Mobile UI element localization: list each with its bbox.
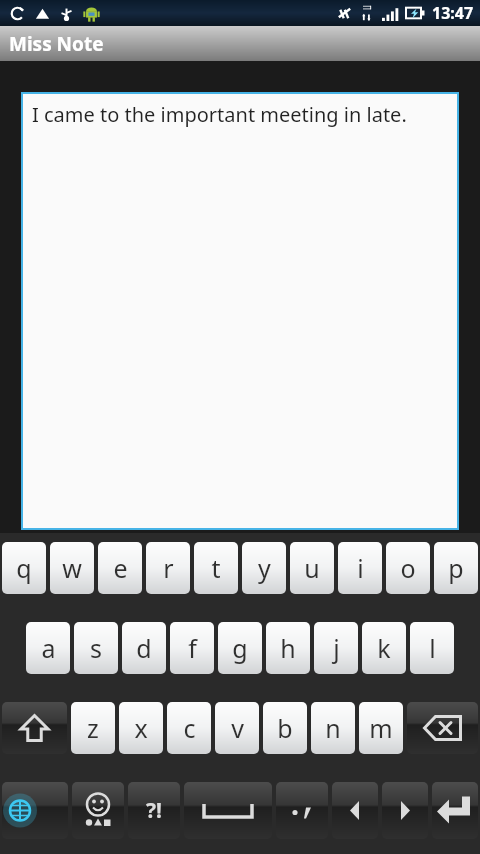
button[interactable]: d — [122, 622, 166, 674]
staticText: x — [134, 711, 148, 745]
button[interactable]: I came to the important meeting in late. — [23, 94, 457, 528]
button[interactable]: u — [290, 542, 334, 594]
button[interactable]: Period — [276, 782, 328, 839]
button[interactable]: h — [266, 622, 310, 674]
button[interactable]: l — [410, 622, 454, 674]
button[interactable]: q — [2, 542, 46, 594]
button[interactable]: s — [74, 622, 118, 674]
staticText: q — [16, 551, 32, 585]
button[interactable]: g — [218, 622, 262, 674]
button[interactable]: Backspace — [407, 702, 478, 754]
staticText: c — [183, 711, 196, 745]
button[interactable]: c — [167, 702, 211, 754]
staticText: s — [90, 631, 102, 665]
button[interactable]: a — [26, 622, 70, 674]
button[interactable]: x — [119, 702, 163, 754]
button[interactable]: Enter — [432, 782, 478, 839]
staticText: p — [448, 551, 464, 585]
button[interactable]: Emoji — [72, 782, 124, 839]
button[interactable]: p — [434, 542, 478, 594]
button[interactable]: f — [170, 622, 214, 674]
button[interactable]: z — [71, 702, 115, 754]
staticText: z — [87, 711, 99, 745]
button[interactable]: y — [242, 542, 286, 594]
staticText: f — [188, 631, 197, 665]
staticText: g — [232, 631, 248, 665]
button[interactable]: t — [194, 542, 238, 594]
button[interactable]: Left — [332, 782, 378, 839]
staticText: w — [62, 551, 82, 585]
staticText: y — [258, 551, 271, 585]
staticText: ?! — [146, 796, 162, 825]
button[interactable]: Shift — [2, 702, 67, 754]
staticText: t — [211, 551, 221, 585]
button[interactable]: n — [311, 702, 355, 754]
staticText: k — [377, 631, 391, 665]
button[interactable]: m — [359, 702, 403, 754]
button[interactable]: i — [338, 542, 382, 594]
staticText: d — [136, 631, 152, 665]
button[interactable]: b — [263, 702, 307, 754]
staticText: a — [41, 631, 56, 665]
button[interactable]: j — [314, 622, 358, 674]
button[interactable]: w — [50, 542, 94, 594]
button[interactable]: Symbols — [128, 782, 180, 839]
staticText: u — [304, 551, 320, 585]
staticText: r — [163, 551, 174, 585]
button[interactable]: v — [215, 702, 259, 754]
staticText: v — [231, 711, 244, 745]
staticText: j — [333, 631, 340, 665]
staticText: m — [369, 711, 393, 745]
button[interactable]: Right — [382, 782, 428, 839]
button[interactable]: o — [386, 542, 430, 594]
button[interactable]: Space — [184, 782, 272, 839]
staticText: Miss Note — [9, 31, 104, 57]
button[interactable]: e — [98, 542, 142, 594]
staticText: h — [280, 631, 296, 665]
staticText: e — [113, 551, 128, 585]
staticText: l — [429, 631, 436, 665]
staticText: n — [325, 711, 341, 745]
button[interactable]: k — [362, 622, 406, 674]
button[interactable]: r — [146, 542, 190, 594]
staticText: i — [357, 551, 364, 585]
button[interactable]: Switch language — [2, 782, 68, 839]
staticText: I came to the important meeting in late. — [32, 101, 407, 128]
staticText: b — [277, 711, 293, 745]
staticText: 13:47 — [432, 2, 474, 24]
staticText: o — [400, 551, 416, 585]
